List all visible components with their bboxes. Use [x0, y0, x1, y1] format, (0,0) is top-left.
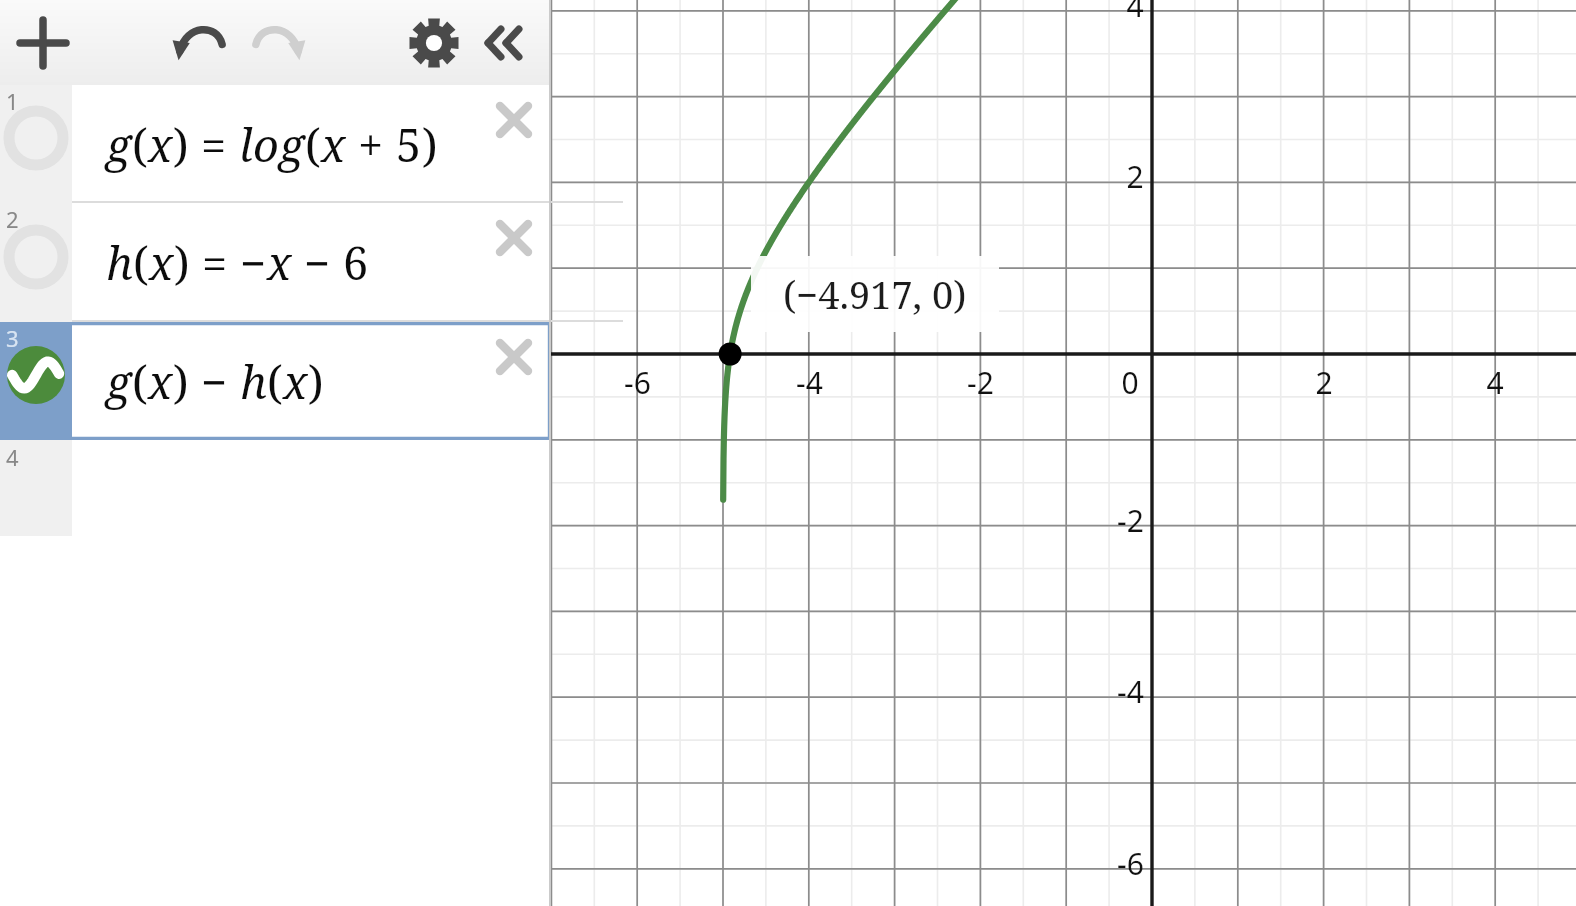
staticText: ( [133, 232, 149, 293]
staticText: 3 [6, 323, 19, 353]
button[interactable]: Settings [404, 13, 464, 73]
staticText: ) [422, 114, 438, 175]
staticText: + [358, 114, 384, 175]
staticText: x [148, 114, 173, 175]
staticText: l [239, 114, 253, 175]
staticText: 2 [1126, 156, 1144, 197]
staticText: − [304, 232, 331, 293]
staticText: 4 [1126, 0, 1144, 26]
staticText: − [201, 351, 228, 412]
button[interactable]: Redo [244, 10, 310, 76]
staticText: ( [132, 351, 148, 412]
staticText: ( [132, 114, 148, 175]
button[interactable]: 2 [0, 203, 551, 322]
staticText: -2 [1117, 500, 1144, 541]
staticText: = [201, 114, 227, 175]
staticText: 1 [6, 86, 19, 116]
staticText: − [240, 232, 267, 293]
staticText: ) [173, 114, 189, 175]
staticText: 2 [1315, 362, 1333, 403]
staticText: 4 [1486, 362, 1504, 403]
staticText: ) [308, 351, 324, 412]
staticText: -6 [624, 362, 651, 403]
button[interactable]: Add expression [12, 12, 74, 74]
staticText: 6 [343, 232, 369, 293]
button[interactable]: Collapse panel [474, 12, 536, 74]
staticText: (−4.917, 0) [783, 268, 967, 320]
staticText: 4 [6, 442, 19, 472]
staticText: g [106, 351, 132, 412]
button[interactable]: Delete expression [487, 93, 541, 147]
button[interactable]: Delete expression [487, 330, 541, 384]
staticText: 5 [396, 114, 422, 175]
staticText: x [321, 114, 346, 175]
button[interactable]: (−4.917, 0) [751, 256, 999, 332]
button[interactable]: Undo [168, 10, 234, 76]
staticText: 2 [6, 204, 19, 234]
button[interactable]: 1 [0, 85, 551, 203]
staticText: -4 [796, 362, 823, 403]
staticText: x [283, 351, 308, 412]
staticText: ) [174, 232, 190, 293]
staticText: g [279, 114, 305, 175]
staticText: ( [267, 351, 283, 412]
staticText: o [253, 114, 279, 175]
staticText: 0 [1121, 362, 1139, 403]
staticText: -6 [1117, 843, 1144, 884]
button[interactable]: 3 [0, 322, 551, 440]
button[interactable]: Toggle graph visibility [7, 228, 65, 286]
button[interactable]: Toggle graph visibility [7, 109, 65, 167]
staticText: x [148, 351, 173, 412]
staticText: ) [173, 351, 189, 412]
staticText: -4 [1117, 671, 1144, 712]
staticText: g [106, 114, 132, 175]
staticText: x [267, 232, 292, 293]
staticText: -2 [967, 362, 994, 403]
button[interactable]: Delete expression [487, 211, 541, 265]
staticText: h [106, 232, 133, 293]
staticText: x [149, 232, 174, 293]
staticText: h [240, 351, 267, 412]
staticText: ( [305, 114, 321, 175]
staticText: = [202, 232, 228, 293]
button[interactable]: Toggle graph visibility [7, 346, 65, 404]
